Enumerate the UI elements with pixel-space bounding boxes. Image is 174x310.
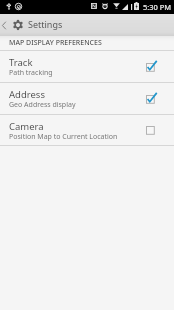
staticText: 5:30 PM [143,2,172,12]
button[interactable]: Track [0,51,174,83]
staticText: Path tracking [9,68,53,78]
staticText: MAP DISPLAY PREFERENCES [9,38,102,48]
staticText: Track [9,56,33,69]
staticText: Address [9,88,45,101]
button[interactable]: Address [0,83,174,115]
staticText: Position Map to Current Location [9,132,118,142]
staticText: Geo Address display [9,100,76,110]
button[interactable]: Navigate up [0,14,11,36]
button[interactable]: Address checked [143,91,159,107]
staticText: Camera [9,120,44,133]
button[interactable]: Track checked [143,59,159,75]
button[interactable]: Camera [0,115,174,146]
button[interactable]: Camera unchecked [143,122,159,138]
staticText: Settings [28,18,63,30]
